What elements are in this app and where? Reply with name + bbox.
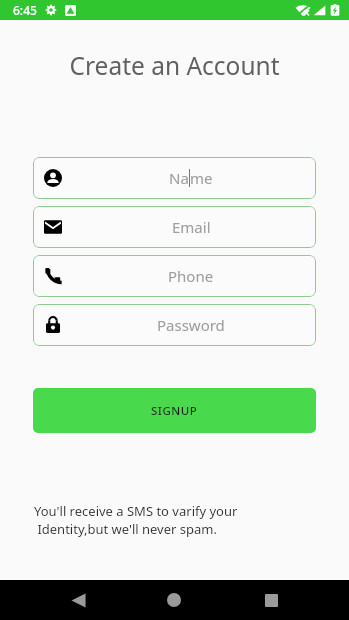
button[interactable]: Na bbox=[33, 157, 316, 199]
staticText: Email bbox=[172, 217, 211, 237]
staticText: You'll receive a SMS to varify your Iden… bbox=[34, 502, 238, 538]
button[interactable]: Home bbox=[154, 580, 194, 620]
staticText: Phone bbox=[168, 266, 214, 286]
button[interactable]: Back bbox=[58, 580, 98, 620]
staticText: me bbox=[190, 168, 213, 188]
staticText: Password bbox=[157, 315, 225, 335]
staticText: Create an Account bbox=[0, 49, 349, 82]
staticText: SIGNUP bbox=[151, 403, 198, 419]
button[interactable]: Email bbox=[33, 206, 316, 248]
staticText: Na bbox=[169, 168, 189, 188]
button[interactable]: SIGNUP bbox=[33, 388, 316, 433]
button[interactable]: Recent apps bbox=[251, 580, 291, 620]
button[interactable]: Password bbox=[33, 304, 316, 346]
button[interactable]: Phone bbox=[33, 255, 316, 297]
staticText: 6:45 bbox=[13, 2, 37, 18]
